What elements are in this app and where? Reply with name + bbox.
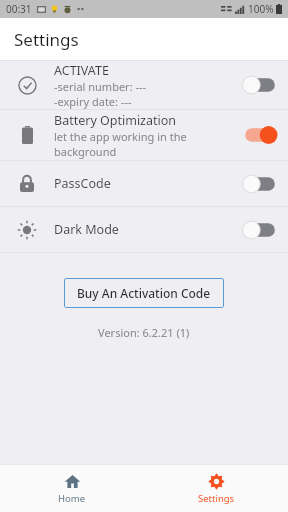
button[interactable]: Dark Mode toggle (241, 218, 279, 242)
staticText: background (54, 144, 117, 159)
button[interactable]: Battery Optimization (0, 110, 288, 160)
button[interactable]: Home (0, 473, 144, 505)
button[interactable]: PassCode (0, 161, 288, 206)
staticText: ACTIVATE (54, 62, 109, 79)
button[interactable]: ACTIVATE toggle (241, 73, 279, 97)
staticText: Settings (14, 28, 79, 51)
staticText: Battery Optimization (54, 112, 177, 129)
staticText: Version: 6.2.21 (1) (98, 325, 190, 340)
staticText: Dark Mode (54, 221, 119, 238)
staticText: Buy An Activation Code (77, 285, 211, 301)
staticText: Home (58, 492, 86, 505)
staticText: PassCode (54, 175, 111, 192)
staticText: let the app working in the (54, 129, 187, 144)
button[interactable]: Battery Optimization toggle (241, 123, 279, 147)
staticText: -expiry date: --- (54, 94, 132, 109)
staticText: Settings (198, 492, 235, 505)
button[interactable]: PassCode toggle (241, 172, 279, 196)
button[interactable]: Settings (144, 473, 288, 505)
staticText: 00:31 (6, 2, 32, 16)
staticText: -serial number: --- (54, 79, 147, 94)
button[interactable]: Buy An Activation Code (64, 278, 224, 308)
staticText: 100% (248, 2, 274, 16)
button[interactable]: Dark Mode (0, 207, 288, 252)
button[interactable]: ACTIVATE (0, 61, 288, 109)
